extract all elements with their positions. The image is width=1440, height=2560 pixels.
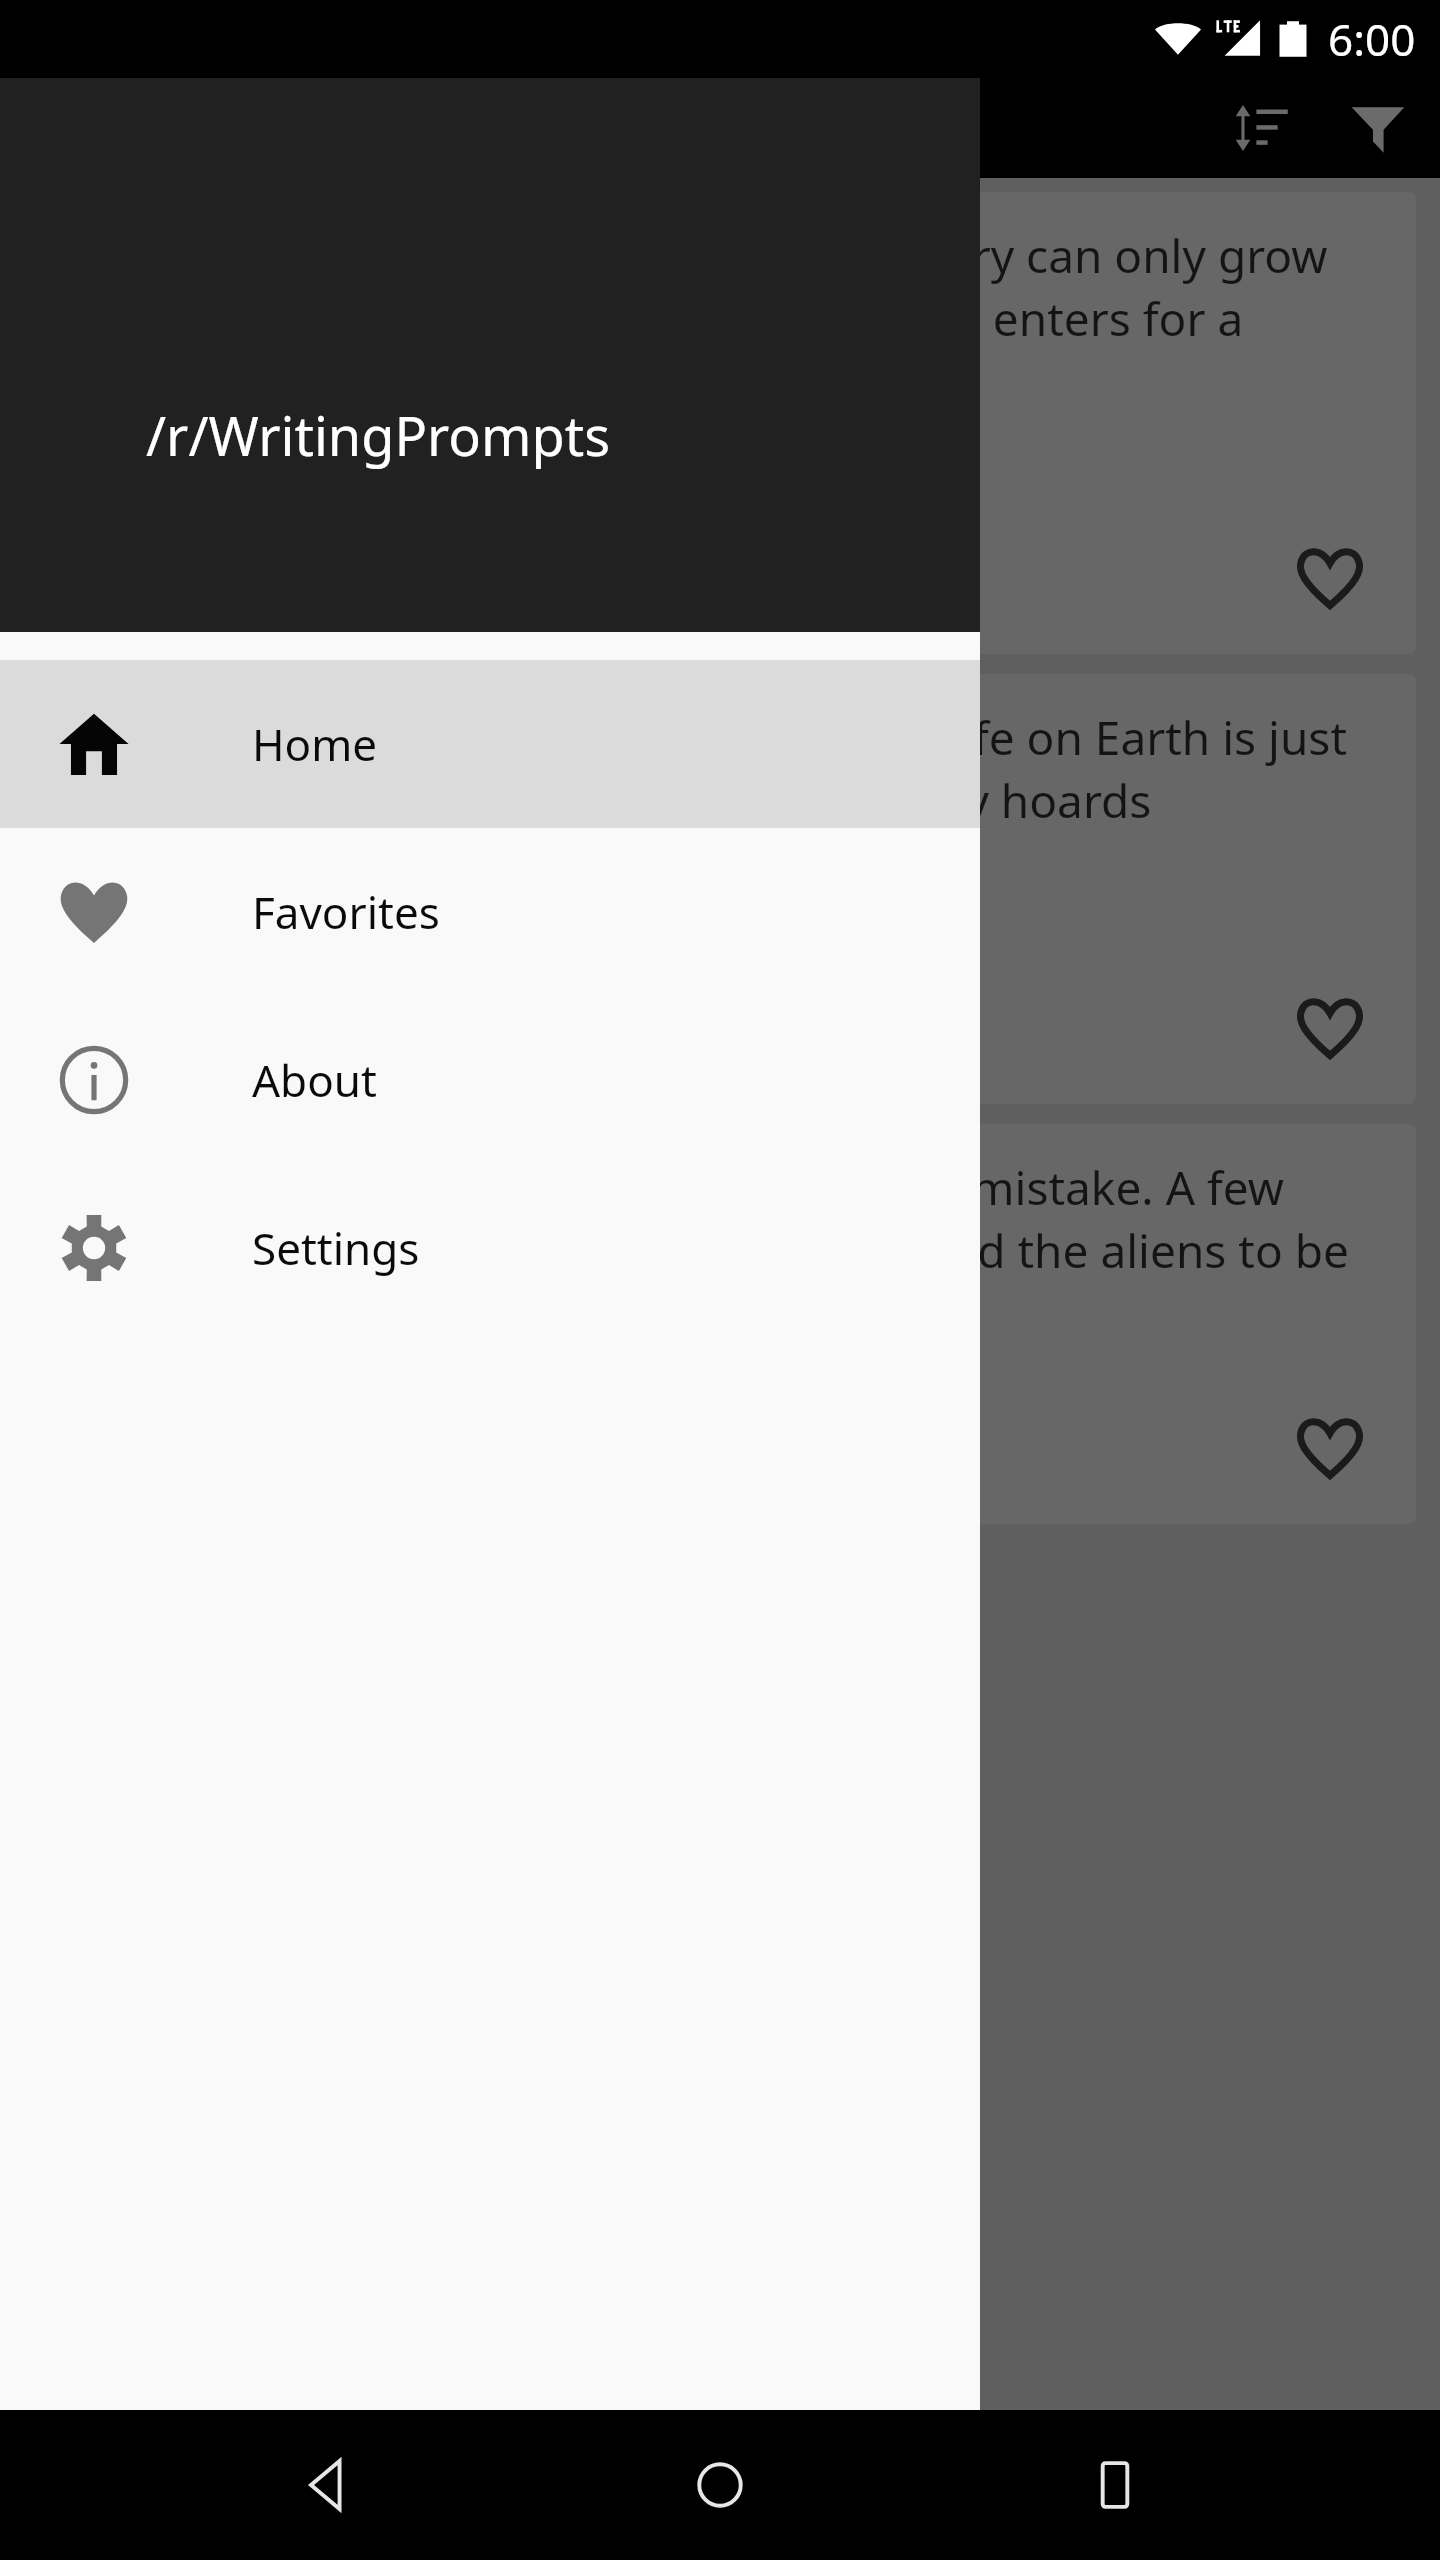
staticText: Favorites (252, 882, 440, 942)
button[interactable]: Recent apps (1045, 2415, 1185, 2555)
button[interactable]: Settings (0, 1164, 980, 1332)
staticText: 3 hours ago (62, 859, 276, 911)
button[interactable]: Humanity makes contact with alien life b… (24, 1124, 1416, 1524)
button[interactable]: About (0, 996, 980, 1164)
staticText: Settings (252, 1218, 420, 1278)
button[interactable]: Filter (1326, 78, 1430, 178)
staticText: Humanity makes contact with alien life b… (62, 1156, 1378, 1343)
button[interactable]: Back (255, 2415, 395, 2555)
button[interactable]: Favorite (1274, 1392, 1386, 1504)
button[interactable]: Home (0, 660, 980, 828)
button[interactable]: Favorite (1274, 522, 1386, 634)
staticText: Home (252, 714, 378, 774)
button[interactable]: Favorites (0, 828, 980, 996)
staticText: About (252, 1050, 377, 1110)
button[interactable]: Sort (1210, 78, 1314, 178)
staticText: The world has a huge population and riva… (62, 224, 1378, 411)
button[interactable]: Favorite (1274, 972, 1386, 1084)
button[interactable]: Home (650, 2415, 790, 2555)
staticText: /r/WritingPrompts (146, 398, 611, 472)
staticText: 6:00 (1328, 9, 1416, 69)
button[interactable]: In a world when you die, you are reborn;… (24, 674, 1416, 1104)
staticText: In a world when you die, you are reborn;… (62, 706, 1378, 831)
button[interactable]: The world has a huge population and riva… (24, 192, 1416, 654)
